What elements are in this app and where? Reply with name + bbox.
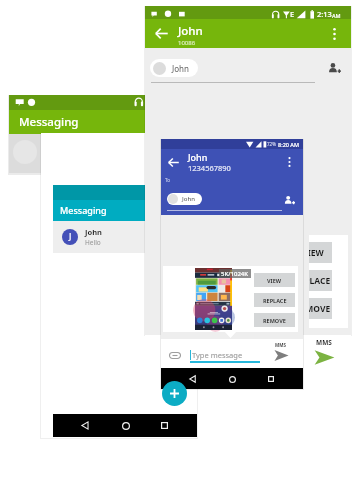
- button[interactable]: VIEW: [254, 273, 295, 287]
- button[interactable]: VIEW: [309, 242, 332, 263]
- staticText: Hello: [85, 238, 101, 247]
- staticText: J: [69, 231, 72, 243]
- staticText: MMS: [312, 338, 336, 347]
- button[interactable]: Back: [151, 23, 171, 43]
- button[interactable]: REPLACE: [309, 270, 332, 291]
- button[interactable]: Home: [225, 372, 239, 386]
- button[interactable]: Back: [186, 372, 200, 386]
- staticText: REPLACE: [263, 297, 287, 304]
- button[interactable]: Send MMS: [273, 348, 290, 363]
- button[interactable]: Back: [165, 154, 181, 170]
- staticText: VIEW: [267, 277, 282, 284]
- button[interactable]: John: [150, 59, 198, 77]
- staticText: AM: [332, 12, 341, 19]
- staticText: REPLACE: [309, 275, 331, 287]
- staticText: Messaging: [19, 114, 79, 130]
- button[interactable]: REMOVE: [309, 298, 332, 319]
- staticText: Type message: [192, 350, 243, 360]
- button[interactable]: J: [53, 221, 197, 253]
- button[interactable]: Home: [118, 418, 133, 433]
- staticText: John: [188, 151, 208, 163]
- staticText: 10086: [178, 39, 196, 47]
- button[interactable]: John: [167, 193, 202, 205]
- staticText: John: [172, 63, 189, 74]
- staticText: REMOVE: [309, 303, 331, 315]
- button[interactable]: More options: [325, 25, 343, 43]
- staticText: John: [182, 195, 195, 203]
- staticText: VIEW: [309, 247, 324, 259]
- staticText: REMOVE: [263, 317, 286, 324]
- staticText: To: [165, 177, 170, 183]
- button[interactable]: REMOVE: [254, 313, 295, 327]
- staticText: John: [178, 23, 203, 39]
- button[interactable]: Recents: [157, 418, 172, 433]
- staticText: 2:13: [317, 9, 332, 19]
- button[interactable]: Add contact: [325, 59, 343, 77]
- button[interactable]: Back: [78, 418, 93, 433]
- staticText: MMS: [275, 342, 286, 348]
- button[interactable]: REPLACE: [254, 293, 295, 307]
- button[interactable]: New message: [162, 381, 187, 406]
- staticText: John: [85, 227, 102, 237]
- staticText: Messaging: [60, 204, 107, 216]
- button[interactable]: Recents: [264, 372, 278, 386]
- staticText: 1234567890: [188, 163, 231, 173]
- button[interactable]: More options: [282, 155, 296, 169]
- staticText: 5K/1024K: [221, 270, 249, 278]
- staticText: 73%: [184, 190, 193, 196]
- staticText: 72%: [267, 141, 276, 147]
- button[interactable]: Add contact: [282, 193, 296, 207]
- staticText: 8:20 AM: [278, 141, 300, 148]
- staticText: E: [290, 9, 295, 19]
